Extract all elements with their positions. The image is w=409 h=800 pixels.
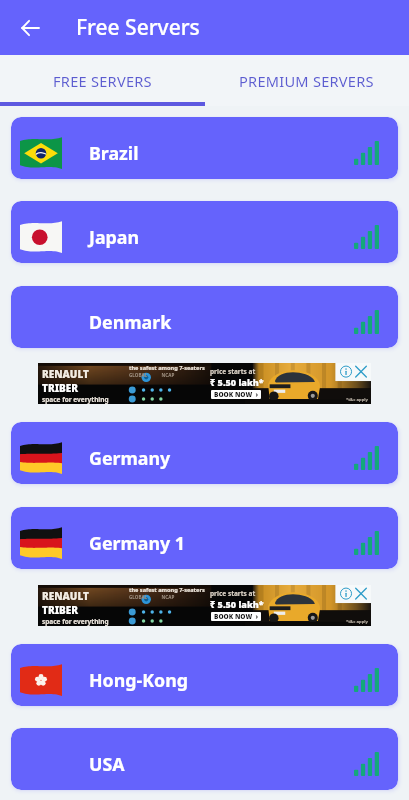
staticText: TRIBER	[42, 603, 79, 617]
staticText: price starts at	[210, 367, 256, 376]
button[interactable]: FREE SERVERS	[0, 55, 204, 106]
button[interactable]: USA	[11, 728, 398, 790]
staticText: RENAULT	[42, 367, 89, 381]
button[interactable]: Brazil	[11, 117, 398, 179]
staticText: FREE SERVERS	[53, 71, 152, 91]
button[interactable]: Germany	[11, 422, 398, 484]
staticText: GLOBAL NCAP	[129, 594, 175, 600]
staticText: Germany 1	[89, 531, 186, 555]
staticText: the safest among 7-seaters	[129, 364, 205, 372]
staticText: USA	[89, 752, 125, 776]
staticText: the safest among 7-seaters	[129, 586, 205, 594]
staticText: *t&c apply	[346, 619, 368, 625]
staticText: Free Servers	[76, 13, 200, 42]
button[interactable]: Germany 1	[11, 507, 398, 569]
staticText: price starts at	[210, 589, 256, 598]
button[interactable]: Advertisement	[38, 363, 371, 404]
button[interactable]: Hong-Kong	[11, 644, 398, 706]
staticText: BOOK NOW ›	[214, 612, 259, 621]
button[interactable]: Back	[10, 8, 50, 48]
staticText: GLOBAL NCAP	[129, 372, 175, 378]
staticText: TRIBER	[42, 381, 79, 395]
staticText: RENAULT	[42, 589, 89, 603]
staticText: Denmark	[89, 310, 172, 334]
staticText: Hong-Kong	[89, 668, 189, 692]
button[interactable]: Advertisement	[38, 585, 371, 626]
staticText: ₹ 5.50 lakh*	[210, 598, 264, 610]
button[interactable]: Japan	[11, 201, 398, 263]
staticText: Germany	[89, 446, 171, 470]
button[interactable]: Denmark	[11, 286, 398, 348]
button[interactable]: PREMIUM SERVERS	[204, 55, 409, 106]
staticText: ₹ 5.50 lakh*	[210, 376, 264, 388]
staticText: Brazil	[89, 141, 139, 165]
staticText: space for everything	[42, 395, 109, 404]
staticText: Japan	[89, 225, 140, 249]
staticText: space for everything	[42, 617, 109, 626]
staticText: BOOK NOW ›	[214, 390, 259, 399]
staticText: *t&c apply	[346, 397, 368, 403]
staticText: PREMIUM SERVERS	[239, 71, 374, 91]
